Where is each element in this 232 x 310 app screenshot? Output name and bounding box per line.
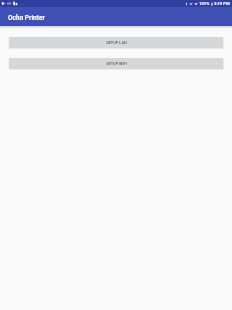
staticText: Ocha Printer xyxy=(8,14,45,22)
staticText: 3:19 PM xyxy=(214,1,230,6)
button[interactable]: SETUP WIFI xyxy=(9,58,223,69)
staticText: 101% xyxy=(199,1,210,6)
staticText: SETUP LAN xyxy=(106,40,127,45)
button[interactable]: SETUP LAN xyxy=(9,37,223,48)
staticText: SETUP WIFI xyxy=(106,61,127,66)
